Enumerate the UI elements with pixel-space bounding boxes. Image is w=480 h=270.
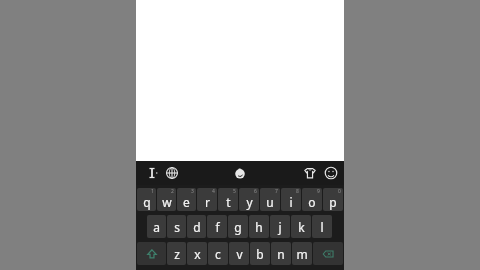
staticText: k <box>298 219 305 235</box>
staticText: 9 <box>317 188 320 195</box>
staticText: b <box>256 246 264 262</box>
button[interactable]: c <box>208 242 228 265</box>
staticText: 6 <box>254 188 257 195</box>
button[interactable]: z <box>167 242 186 265</box>
staticText: l <box>320 219 324 235</box>
staticText: w <box>162 194 172 210</box>
staticText: d <box>193 219 201 235</box>
staticText: v <box>236 246 243 262</box>
staticText: m <box>296 246 308 262</box>
staticText: a <box>153 219 160 235</box>
button[interactable]: d <box>187 215 206 238</box>
button[interactable]: 0 <box>323 188 343 211</box>
staticText: 5 <box>233 188 236 195</box>
button[interactable]: g <box>228 215 248 238</box>
staticText: t <box>226 194 231 210</box>
button[interactable]: Text cursor <box>144 165 160 181</box>
button[interactable]: 2 <box>157 188 176 211</box>
button[interactable]: 9 <box>302 188 322 211</box>
button[interactable]: 7 <box>260 188 280 211</box>
button[interactable]: v <box>229 242 249 265</box>
staticText: j <box>278 219 282 235</box>
button[interactable]: m <box>292 242 312 265</box>
button[interactable]: x <box>187 242 207 265</box>
staticText: p <box>329 194 337 210</box>
button[interactable]: n <box>271 242 291 265</box>
button[interactable]: j <box>270 215 290 238</box>
button[interactable]: 5 <box>218 188 238 211</box>
button[interactable]: 6 <box>239 188 259 211</box>
button[interactable]: l <box>312 215 332 238</box>
staticText: g <box>234 219 242 235</box>
staticText: e <box>183 194 190 210</box>
staticText: 8 <box>296 188 299 195</box>
button[interactable]: 4 <box>197 188 217 211</box>
button[interactable]: s <box>167 215 186 238</box>
staticText: 0 <box>338 188 341 195</box>
button[interactable]: a <box>147 215 166 238</box>
staticText: c <box>215 246 221 262</box>
staticText: 3 <box>191 188 194 195</box>
button[interactable]: Backspace <box>313 242 343 265</box>
staticText: 7 <box>275 188 278 195</box>
button[interactable]: b <box>250 242 270 265</box>
staticText: f <box>215 219 220 235</box>
button[interactable]: Shift <box>137 242 166 265</box>
button[interactable]: 3 <box>177 188 196 211</box>
staticText: q <box>143 194 151 210</box>
staticText: s <box>174 219 180 235</box>
staticText: z <box>174 246 180 262</box>
staticText: h <box>255 219 263 235</box>
button[interactable]: f <box>207 215 227 238</box>
button[interactable]: Gesture typing <box>232 165 248 181</box>
button[interactable]: h <box>249 215 269 238</box>
staticText: x <box>194 246 201 262</box>
button[interactable]: Emoji <box>323 165 339 181</box>
button[interactable]: Language <box>164 165 180 181</box>
staticText: n <box>277 246 285 262</box>
staticText: o <box>308 194 316 210</box>
staticText: y <box>246 194 253 210</box>
staticText: r <box>205 194 210 210</box>
staticText: u <box>266 194 274 210</box>
staticText: 4 <box>212 188 215 195</box>
button[interactable]: 8 <box>281 188 301 211</box>
button[interactable]: k <box>291 215 311 238</box>
staticText: 2 <box>171 188 174 195</box>
staticText: 1 <box>151 188 154 195</box>
staticText: i <box>289 194 293 210</box>
button[interactable]: 1 <box>137 188 156 211</box>
button[interactable]: Theme <box>302 165 318 181</box>
